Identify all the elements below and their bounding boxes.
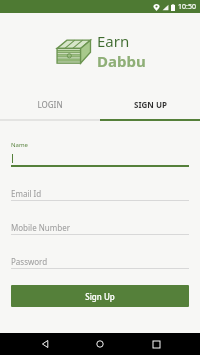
button[interactable]: Home — [89, 333, 111, 355]
staticText: 10:50 — [178, 2, 196, 12]
button[interactable]: Sign Up — [11, 285, 189, 307]
staticText: Sign Up — [85, 291, 115, 302]
button[interactable]: SIGN UP — [100, 93, 200, 115]
staticText: Password — [11, 256, 48, 267]
button[interactable]: LOGIN — [0, 93, 100, 115]
button[interactable]: Back — [34, 333, 56, 355]
staticText: Earn — [97, 31, 130, 51]
button[interactable]: Password — [11, 255, 189, 269]
staticText: LOGIN — [37, 99, 63, 110]
button[interactable]: Email Id — [11, 187, 189, 201]
staticText: Mobile Number — [11, 222, 70, 233]
button[interactable] — [11, 152, 189, 165]
staticText: Email Id — [11, 188, 42, 199]
staticText: SIGN UP — [134, 99, 167, 110]
staticText: Name — [11, 141, 28, 149]
button[interactable]: Mobile Number — [11, 221, 189, 235]
staticText: Dabbu — [97, 51, 146, 71]
button[interactable]: Recent apps — [145, 333, 167, 355]
